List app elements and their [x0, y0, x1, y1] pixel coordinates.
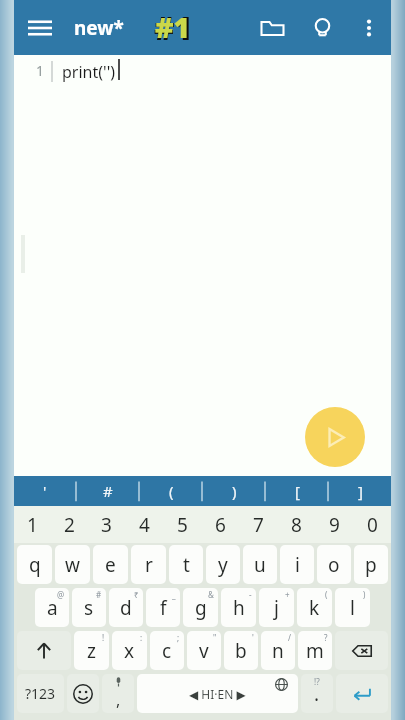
button[interactable]: u [243, 545, 277, 584]
staticText: ◀ HI·EN ▶ [189, 686, 246, 702]
staticText: [ [295, 481, 300, 501]
button[interactable]: 1 [14, 506, 51, 543]
button[interactable]: . [301, 674, 333, 713]
staticText: x [124, 638, 135, 664]
staticText: o [328, 552, 340, 578]
button[interactable]: 0 [353, 506, 391, 543]
staticText: #1 [154, 7, 193, 49]
staticText: ? [324, 632, 328, 643]
staticText: #1 [155, 8, 190, 46]
button[interactable]: ' [14, 476, 76, 506]
button[interactable]: c [150, 631, 184, 670]
button[interactable]: 9 [315, 506, 353, 543]
staticText: l [350, 595, 355, 621]
staticText: ( [169, 481, 174, 501]
button[interactable]: Run code [305, 407, 365, 467]
button[interactable]: 3 [88, 506, 125, 543]
staticText: s [84, 595, 94, 621]
staticText: j [274, 595, 279, 621]
staticText: d [120, 595, 132, 621]
button[interactable]: m [298, 631, 332, 670]
staticText: # [103, 481, 113, 501]
button[interactable]: n [261, 631, 295, 670]
button[interactable]: h [221, 588, 256, 627]
button[interactable]: l [335, 588, 370, 627]
button[interactable]: # [77, 476, 139, 506]
button[interactable]: d [109, 588, 143, 627]
button[interactable]: new* [66, 15, 132, 41]
button[interactable]: z [74, 631, 109, 670]
staticText: ' [252, 632, 254, 643]
staticText: " [213, 632, 217, 643]
staticText: 1 [36, 61, 45, 80]
button[interactable]: Enter [336, 674, 388, 713]
button[interactable]: 5 [163, 506, 201, 543]
staticText: n [272, 638, 284, 664]
button[interactable]: p [354, 545, 388, 584]
staticText: 5 [177, 512, 188, 538]
button[interactable]: ( [140, 476, 202, 506]
staticText: ?123 [25, 684, 56, 703]
button[interactable]: 7 [239, 506, 277, 543]
staticText: t [183, 552, 190, 578]
staticText: ( [325, 589, 328, 600]
staticText: ) [232, 481, 237, 501]
button[interactable]: 6 [201, 506, 239, 543]
staticText: ] [358, 481, 363, 501]
button[interactable]: 2 [51, 506, 88, 543]
button[interactable]: y [206, 545, 240, 584]
button[interactable]: q [17, 545, 52, 584]
button[interactable]: t [169, 545, 203, 584]
staticText: z [87, 638, 96, 664]
staticText: + [285, 589, 290, 600]
staticText: : [140, 632, 143, 643]
button[interactable]: g [183, 588, 218, 627]
button[interactable]: Hints [297, 3, 347, 53]
button[interactable]: ) [203, 476, 265, 506]
staticText: # [96, 589, 102, 600]
button[interactable]: x [112, 631, 147, 670]
staticText: ₹ [134, 589, 139, 600]
staticText: ) [363, 589, 366, 600]
button[interactable]: o [317, 545, 351, 584]
button[interactable]: ?123 [17, 674, 64, 713]
staticText: - [249, 589, 252, 600]
button[interactable]: s [72, 588, 106, 627]
button[interactable]: [ [266, 476, 328, 506]
staticText: !? [314, 676, 320, 687]
button[interactable]: v [187, 631, 221, 670]
button[interactable]: Open file [247, 3, 297, 53]
staticText: 9 [329, 512, 340, 538]
button[interactable]: Comma and voice input [102, 674, 134, 713]
button[interactable]: e [93, 545, 128, 584]
button[interactable]: j [259, 588, 294, 627]
button[interactable]: Emoji [67, 674, 99, 713]
button[interactable]: More options [347, 6, 391, 50]
button[interactable]: Shift [17, 631, 71, 670]
staticText: p [365, 552, 377, 578]
staticText: 1 [27, 512, 38, 538]
staticText: a [47, 595, 58, 621]
button[interactable]: k [297, 588, 332, 627]
button[interactable]: Menu [14, 2, 66, 54]
staticText: y [218, 552, 228, 578]
staticText: 2 [64, 512, 75, 538]
button[interactable]: a [35, 588, 69, 627]
button[interactable]: w [55, 545, 90, 584]
staticText: q [29, 552, 41, 578]
staticText: m [306, 638, 324, 664]
button[interactable]: f [146, 588, 180, 627]
button[interactable]: Space [137, 674, 298, 713]
button[interactable]: ] [329, 476, 391, 506]
staticText: ' [43, 481, 47, 501]
staticText: g [195, 595, 207, 621]
button[interactable]: Backspace [335, 631, 388, 670]
button[interactable]: 8 [277, 506, 315, 543]
staticText: u [254, 552, 266, 578]
button[interactable]: b [224, 631, 258, 670]
button[interactable]: 4 [125, 506, 163, 543]
button[interactable]: i [280, 545, 314, 584]
button[interactable]: r [131, 545, 166, 584]
staticText: k [309, 595, 320, 621]
staticText: _ [172, 589, 176, 600]
